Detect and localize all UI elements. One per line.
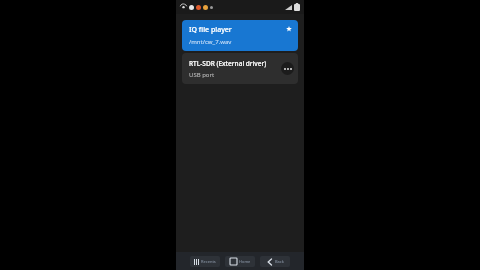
staticText: Back [275,259,284,264]
button[interactable]: RTL-SDR (External driver) [182,53,298,84]
button[interactable]: More options [281,62,294,75]
button[interactable]: Favorite [284,24,293,33]
button[interactable]: Recent apps [190,256,220,267]
staticText: Home [239,259,251,264]
staticText: /mnt/cw_7.wav [189,38,232,46]
staticText: RTL-SDR (External driver) [189,59,267,68]
staticText: IQ file player [189,25,232,35]
button[interactable]: Back [260,256,290,267]
button[interactable]: IQ file player [182,20,298,51]
button[interactable]: Home [225,256,255,267]
staticText: Recents [201,259,216,264]
staticText: USB port [189,71,215,79]
